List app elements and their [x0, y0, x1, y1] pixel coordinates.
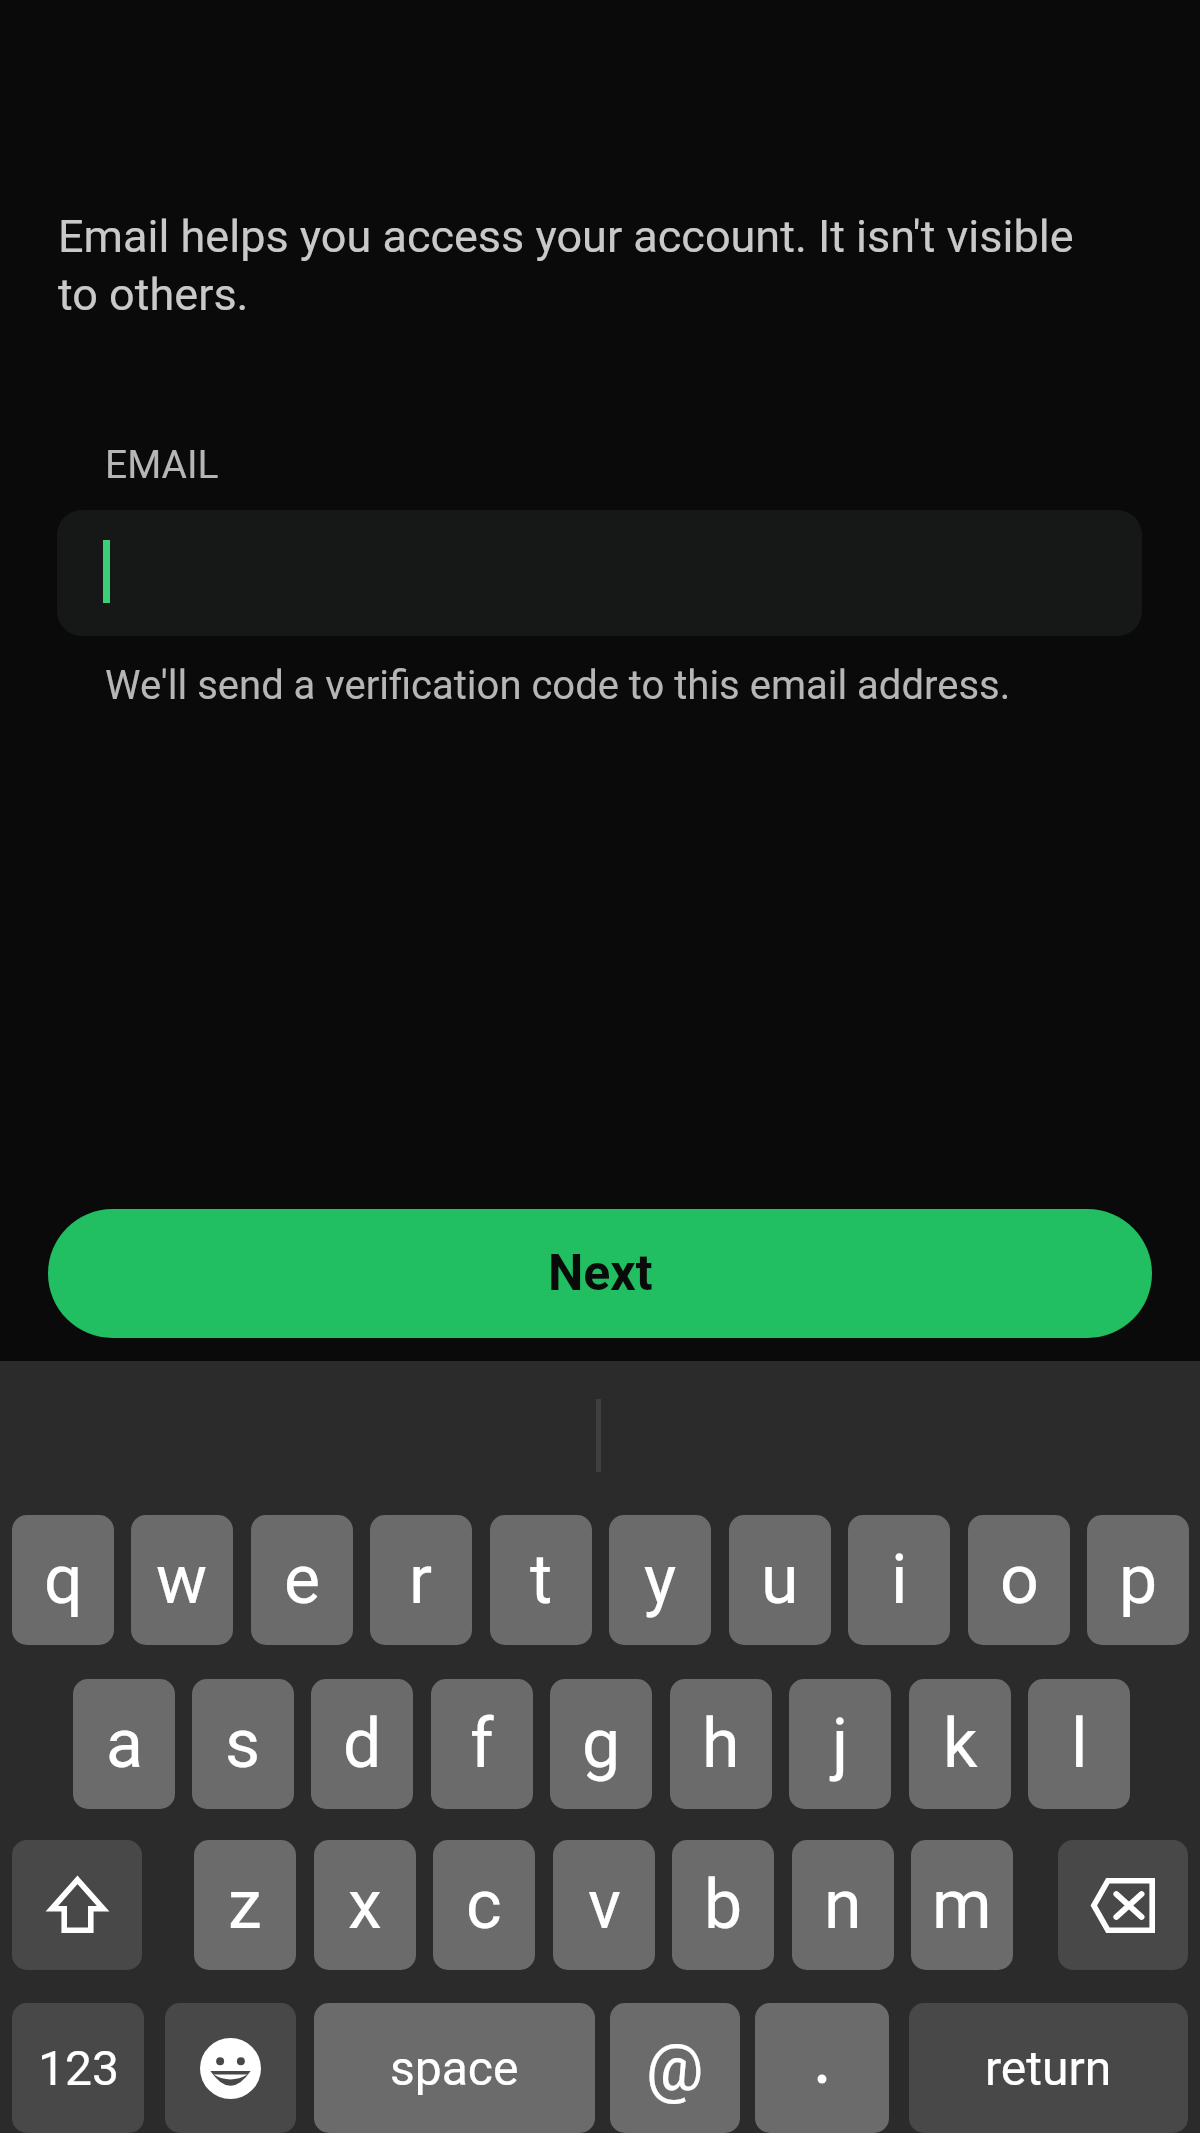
button[interactable]: y — [609, 1515, 711, 1645]
staticText: l — [1071, 1704, 1088, 1784]
button[interactable]: v — [553, 1840, 655, 1970]
button[interactable]: z — [194, 1840, 296, 1970]
staticText: e — [284, 1540, 321, 1620]
staticText: @ — [646, 2031, 704, 2106]
staticText: q — [44, 1540, 83, 1620]
button[interactable]: d — [311, 1679, 413, 1809]
staticText: a — [106, 1704, 143, 1784]
staticText: Next — [548, 1244, 653, 1303]
staticText: u — [761, 1540, 799, 1620]
staticText: t — [530, 1540, 553, 1620]
staticText: j — [832, 1704, 849, 1784]
staticText: i — [891, 1540, 908, 1620]
button[interactable]: j — [789, 1679, 891, 1809]
staticText: y — [644, 1540, 677, 1620]
button[interactable] — [57, 510, 1142, 636]
staticText: return — [985, 2040, 1112, 2096]
staticText: p — [1119, 1540, 1158, 1620]
button[interactable]: w — [131, 1515, 233, 1645]
staticText: x — [348, 1865, 382, 1945]
staticText: f — [470, 1704, 494, 1784]
button[interactable]: o — [968, 1515, 1070, 1645]
staticText: We'll send a verification code to this e… — [105, 662, 1011, 709]
button[interactable]: e — [251, 1515, 353, 1645]
staticText: n — [824, 1865, 862, 1945]
staticText: b — [704, 1865, 743, 1945]
button[interactable]: f — [431, 1679, 533, 1809]
staticText: z — [228, 1865, 262, 1945]
button[interactable]: @ — [610, 2003, 740, 2133]
button[interactable]: h — [670, 1679, 772, 1809]
staticText: c — [466, 1865, 502, 1945]
button[interactable]: a — [73, 1679, 175, 1809]
staticText: m — [932, 1865, 992, 1945]
staticText: k — [943, 1704, 978, 1784]
button[interactable]: i — [848, 1515, 950, 1645]
staticText: g — [582, 1704, 621, 1784]
staticText: s — [225, 1704, 261, 1784]
button[interactable]: s — [192, 1679, 294, 1809]
button[interactable]: t — [490, 1515, 592, 1645]
button[interactable]: Next — [48, 1209, 1152, 1338]
staticText: Email helps you access your account. It … — [58, 210, 1088, 321]
button[interactable]: n — [792, 1840, 894, 1970]
staticText: space — [390, 2040, 519, 2096]
button[interactable]: r — [370, 1515, 472, 1645]
button[interactable]: return — [909, 2003, 1188, 2133]
button[interactable]: Shift — [12, 1840, 142, 1970]
staticText: h — [702, 1704, 740, 1784]
staticText: w — [156, 1540, 208, 1620]
button[interactable]: Backspace — [1058, 1840, 1188, 1970]
button[interactable]: l — [1028, 1679, 1130, 1809]
button[interactable]: c — [433, 1840, 535, 1970]
button[interactable]: 123 — [12, 2003, 144, 2133]
staticText: d — [343, 1704, 382, 1784]
staticText: v — [588, 1865, 621, 1945]
staticText: r — [409, 1540, 433, 1620]
button[interactable]: space — [314, 2003, 595, 2133]
button[interactable]: Period — [755, 2003, 889, 2133]
button[interactable]: u — [729, 1515, 831, 1645]
button[interactable]: x — [314, 1840, 416, 1970]
button[interactable]: Emoji — [165, 2003, 296, 2133]
button[interactable]: p — [1087, 1515, 1189, 1645]
staticText: EMAIL — [105, 442, 219, 488]
staticText: o — [1000, 1540, 1039, 1620]
button[interactable]: q — [12, 1515, 114, 1645]
button[interactable]: k — [909, 1679, 1011, 1809]
button[interactable]: g — [550, 1679, 652, 1809]
button[interactable]: b — [672, 1840, 774, 1970]
button[interactable]: m — [911, 1840, 1013, 1970]
staticText: 123 — [38, 2040, 119, 2096]
